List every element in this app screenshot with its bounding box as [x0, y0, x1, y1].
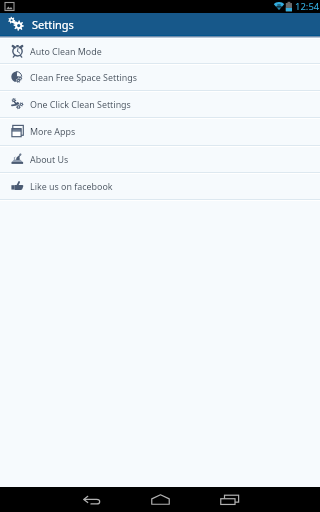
button[interactable]: Recent apps: [208, 487, 250, 512]
staticText: One Click Clean Settings: [30, 98, 131, 110]
button[interactable]: About Us: [0, 146, 320, 172]
staticText: More Apps: [30, 125, 76, 137]
staticText: Clean Free Space Settings: [30, 71, 137, 83]
button[interactable]: Home: [139, 487, 181, 512]
button[interactable]: More Apps: [0, 118, 320, 144]
button[interactable]: Clean Free Space Settings: [0, 64, 320, 90]
staticText: About Us: [30, 153, 69, 165]
button[interactable]: One Click Clean Settings: [0, 91, 320, 117]
staticText: Like us on facebook: [30, 180, 113, 192]
button[interactable]: Auto Clean Mode: [0, 38, 320, 63]
button[interactable]: Like us on facebook: [0, 173, 320, 199]
staticText: Auto Clean Mode: [30, 45, 102, 57]
staticText: Settings: [32, 17, 74, 32]
button[interactable]: Settings: [0, 13, 320, 38]
button[interactable]: Back: [71, 487, 113, 512]
staticText: 12:54: [295, 0, 320, 13]
